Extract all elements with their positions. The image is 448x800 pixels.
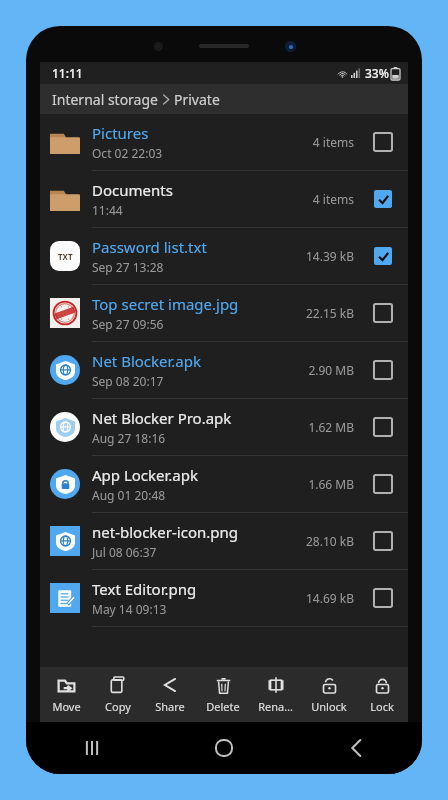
button[interactable]: Unlock bbox=[302, 667, 355, 722]
staticText: 33% bbox=[365, 65, 389, 81]
staticText: 11:44 bbox=[92, 202, 123, 218]
button[interactable]: Pictures bbox=[40, 114, 408, 170]
staticText: TXT bbox=[58, 251, 73, 262]
staticText: Lock bbox=[370, 699, 394, 714]
button[interactable]: Not selected bbox=[368, 412, 398, 442]
staticText: Password list.txt bbox=[92, 237, 207, 257]
staticText: May 14 09:13 bbox=[92, 601, 167, 617]
staticText: Sep 27 13:28 bbox=[92, 259, 164, 275]
staticText: Aug 01 20:48 bbox=[92, 487, 166, 503]
staticText: Aug 27 18:16 bbox=[92, 430, 166, 446]
button[interactable]: Not selected bbox=[368, 127, 398, 157]
button[interactable]: Share bbox=[144, 667, 196, 722]
button[interactable]: Selected bbox=[368, 241, 398, 271]
staticText: Private bbox=[174, 90, 220, 109]
staticText: 22.15 kB bbox=[305, 305, 354, 321]
staticText: Internal storage bbox=[52, 90, 158, 109]
button[interactable]: Net Blocker.apk bbox=[40, 342, 408, 398]
staticText: Unlock bbox=[311, 699, 347, 714]
staticText: net-blocker-icon.png bbox=[92, 522, 238, 542]
staticText: 4 items bbox=[312, 134, 354, 150]
button[interactable]: Not selected bbox=[368, 469, 398, 499]
staticText: Move bbox=[52, 699, 81, 714]
staticText: 1.62 MB bbox=[308, 419, 354, 435]
button[interactable]: Copy bbox=[92, 667, 144, 722]
button[interactable]: Recents bbox=[26, 722, 158, 774]
staticText: Sep 08 20:17 bbox=[92, 373, 164, 389]
button[interactable]: Not selected bbox=[368, 355, 398, 385]
staticText: Text Editor.png bbox=[92, 579, 197, 599]
staticText: Documents bbox=[92, 180, 173, 200]
staticText: Sep 27 09:56 bbox=[92, 316, 164, 332]
staticText: Net Blocker Pro.apk bbox=[92, 408, 232, 428]
button[interactable]: Lock bbox=[355, 667, 408, 722]
staticText: Pictures bbox=[92, 123, 149, 143]
button[interactable]: Internal storage bbox=[40, 84, 408, 114]
button[interactable]: Rena… bbox=[249, 667, 302, 722]
button[interactable]: net-blocker-icon.png bbox=[40, 513, 408, 569]
staticText: 14.69 kB bbox=[305, 590, 354, 606]
staticText: Share bbox=[155, 699, 185, 714]
staticText: Rena… bbox=[258, 699, 293, 714]
staticText: 1.66 MB bbox=[308, 476, 354, 492]
button[interactable]: Not selected bbox=[368, 298, 398, 328]
staticText: Copy bbox=[105, 699, 131, 714]
button[interactable]: Selected bbox=[368, 184, 398, 214]
button[interactable]: Delete bbox=[196, 667, 249, 722]
staticText: Oct 02 22:03 bbox=[92, 145, 163, 161]
staticText: 4 items bbox=[312, 191, 354, 207]
button[interactable]: TXT bbox=[40, 228, 408, 284]
staticText: App Locker.apk bbox=[92, 465, 199, 485]
staticText: Delete bbox=[206, 699, 240, 714]
button[interactable]: Move bbox=[40, 667, 92, 722]
staticText: 11:11 bbox=[52, 65, 83, 81]
button[interactable]: App Locker.apk bbox=[40, 456, 408, 512]
staticText: Top secret image.jpg bbox=[92, 294, 239, 314]
button[interactable]: Home bbox=[158, 722, 290, 774]
button[interactable]: Not selected bbox=[368, 526, 398, 556]
button[interactable]: Top secret image.jpg bbox=[40, 285, 408, 341]
button[interactable]: Net Blocker Pro.apk bbox=[40, 399, 408, 455]
staticText: 14.39 kB bbox=[305, 248, 354, 264]
button[interactable]: Documents bbox=[40, 171, 408, 227]
staticText: 2.90 MB bbox=[308, 362, 354, 378]
staticText: 28.10 kB bbox=[305, 533, 354, 549]
staticText: Jul 08 06:37 bbox=[92, 544, 157, 560]
button[interactable]: Not selected bbox=[368, 583, 398, 613]
button[interactable]: Text Editor.png bbox=[40, 570, 408, 626]
staticText: Net Blocker.apk bbox=[92, 351, 202, 371]
button[interactable]: Back bbox=[290, 722, 422, 774]
